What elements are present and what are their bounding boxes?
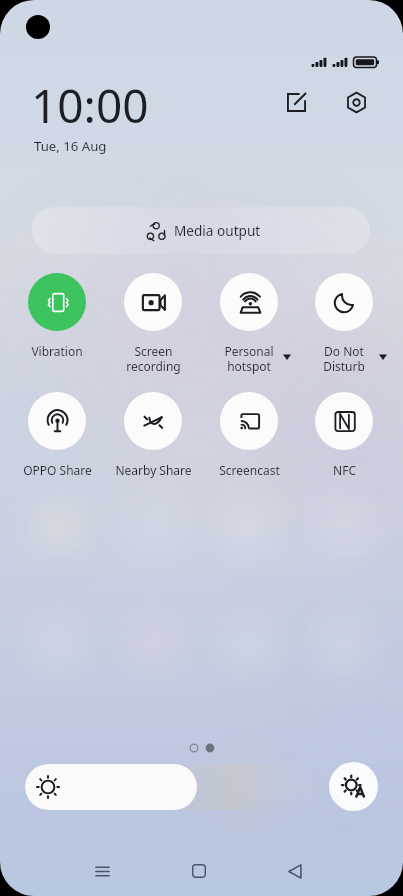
button[interactable]: Back (275, 851, 315, 891)
staticText: Media output (174, 221, 261, 240)
button[interactable] (25, 764, 313, 810)
button[interactable]: Recent apps (82, 851, 122, 891)
staticText: Tue, 16 Aug (34, 137, 107, 155)
button[interactable]: Screencast (201, 392, 297, 478)
staticText: Personal hotspot (224, 343, 274, 375)
staticText: NFC (333, 462, 356, 478)
button[interactable]: NFC (296, 392, 392, 478)
staticText: Vibration (31, 343, 83, 359)
staticText: Do Not Disturb (323, 343, 365, 375)
button[interactable]: Settings (339, 85, 374, 120)
button[interactable]: Vibration (9, 273, 105, 359)
staticText: Screencast (219, 462, 280, 478)
button[interactable]: Nearby Share (105, 392, 201, 478)
button[interactable]: Media output (32, 207, 370, 254)
button[interactable]: Do Not Disturb (296, 273, 392, 375)
button[interactable]: Home (179, 851, 219, 891)
button[interactable]: Personal hotspot (201, 273, 297, 375)
staticText: Nearby Share (115, 462, 192, 478)
button[interactable]: Expand (374, 348, 392, 366)
button[interactable]: Auto brightness (329, 762, 378, 811)
staticText: 10:00 (31, 74, 149, 137)
staticText: Screen recording (126, 343, 181, 375)
button[interactable]: OPPO Share (9, 392, 105, 478)
button[interactable]: Expand (278, 348, 296, 366)
staticText: OPPO Share (23, 462, 92, 478)
button[interactable]: Edit (279, 85, 314, 120)
button[interactable]: Screen recording (105, 273, 201, 375)
